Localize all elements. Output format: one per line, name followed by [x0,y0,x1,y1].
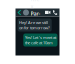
button[interactable]: Alex Parker [15,8,59,16]
staticText: Hey! Are we still on for tomorrow? [19,20,50,30]
staticText: Yes! Let's meet at the cafe at 10am [25,35,56,45]
staticText: online [30,24,40,29]
staticText: Alex Parker [30,0,41,24]
